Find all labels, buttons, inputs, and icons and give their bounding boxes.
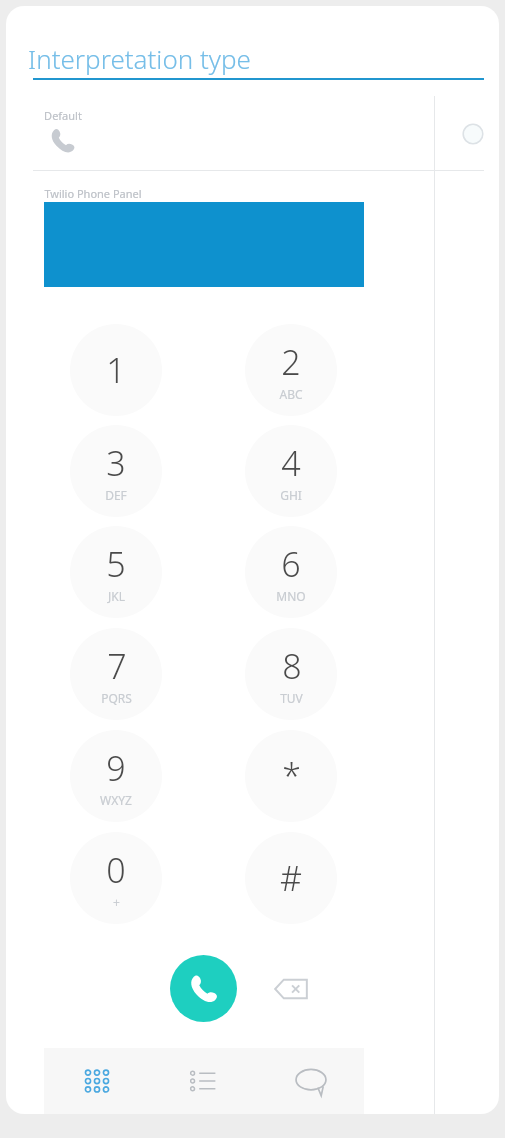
staticText: TUV xyxy=(280,690,303,706)
staticText: 0 xyxy=(106,847,126,893)
button[interactable]: Default xyxy=(6,102,434,170)
staticText: 8 xyxy=(282,643,302,689)
button[interactable]: Interpretation type xyxy=(28,38,484,78)
button[interactable]: 4 xyxy=(245,425,337,517)
button[interactable]: * xyxy=(245,730,337,822)
staticText: 5 xyxy=(106,541,126,587)
button[interactable]: Backspace xyxy=(267,965,315,1013)
staticText: 3 xyxy=(106,440,126,486)
staticText: Interpretation type xyxy=(28,41,251,76)
button[interactable]: 9 xyxy=(70,730,162,822)
button[interactable]: Call xyxy=(170,955,237,1022)
button[interactable]: 7 xyxy=(70,628,162,720)
button[interactable]: Recent calls xyxy=(150,1048,257,1114)
button[interactable]: 5 xyxy=(70,526,162,618)
staticText: GHI xyxy=(280,487,302,503)
staticText: 2 xyxy=(281,339,301,385)
staticText: MNO xyxy=(276,588,306,604)
button[interactable]: Messages xyxy=(257,1048,364,1114)
button[interactable]: Select Default xyxy=(434,96,499,171)
staticText: DEF xyxy=(105,487,127,503)
staticText: 1 xyxy=(106,347,126,393)
button[interactable]: # xyxy=(245,832,337,924)
button[interactable]: 0 xyxy=(70,832,162,924)
button[interactable]: 1 xyxy=(70,324,162,416)
staticText: 9 xyxy=(106,745,126,791)
button[interactable]: 8 xyxy=(245,628,337,720)
staticText: JKL xyxy=(108,588,125,604)
staticText: # xyxy=(280,855,302,901)
staticText: PQRS xyxy=(101,690,132,706)
staticText: WXYZ xyxy=(100,792,132,808)
button[interactable]: Dialpad xyxy=(44,1048,150,1114)
button[interactable]: 2 xyxy=(245,324,337,416)
staticText: Default xyxy=(44,108,82,123)
staticText: ABC xyxy=(279,386,303,402)
staticText: * xyxy=(282,753,301,799)
button[interactable]: 3 xyxy=(70,425,162,517)
staticText: 6 xyxy=(281,541,301,587)
staticText: + xyxy=(113,894,120,910)
staticText: Twilio Phone Panel xyxy=(44,186,142,201)
staticText: 7 xyxy=(107,643,127,689)
staticText: 4 xyxy=(281,440,301,486)
button[interactable]: 6 xyxy=(245,526,337,618)
